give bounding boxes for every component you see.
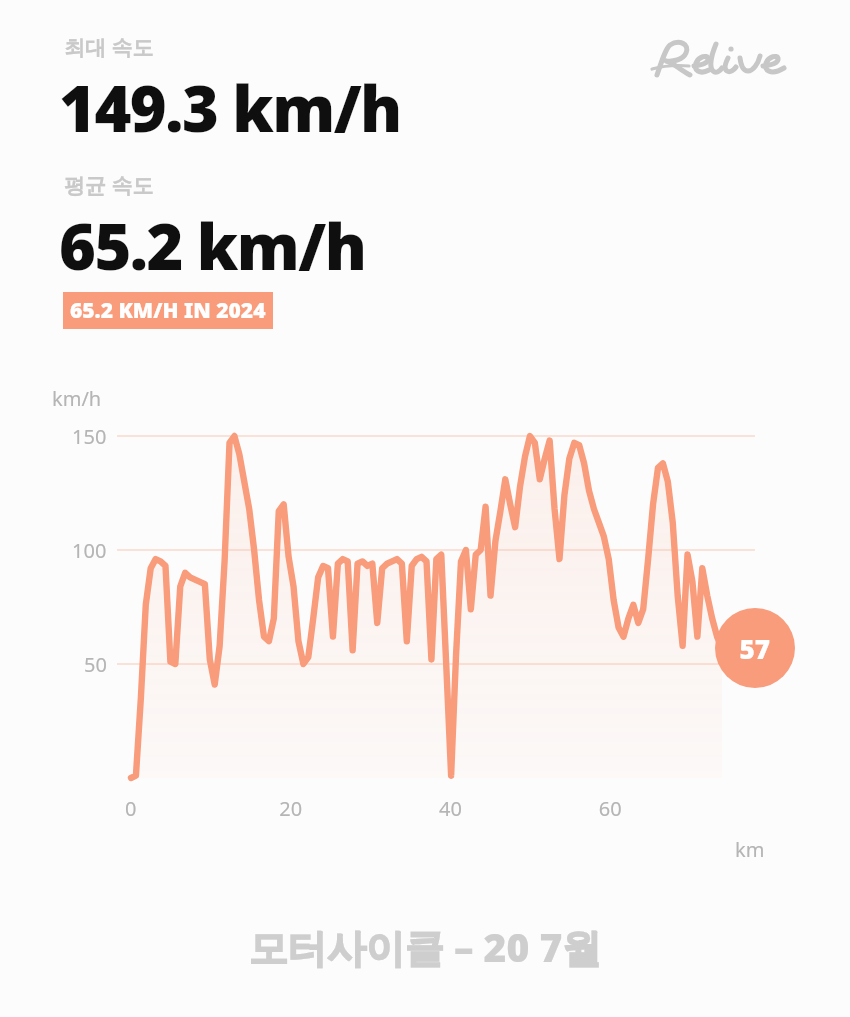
button[interactable]: Relive [641, 37, 791, 81]
staticText: 모터사이클 – 20 7월 [0, 920, 850, 973]
staticText: 65.2 KM/H IN 2024 [70, 296, 266, 325]
staticText: 평균 속도 [64, 171, 154, 200]
staticText: 65.2 km/h [59, 203, 366, 289]
button[interactable]: 65.2 KM/H IN 2024 [63, 292, 273, 329]
staticText: 149.3 km/h [59, 65, 401, 151]
staticText: 최대 속도 [64, 33, 154, 62]
